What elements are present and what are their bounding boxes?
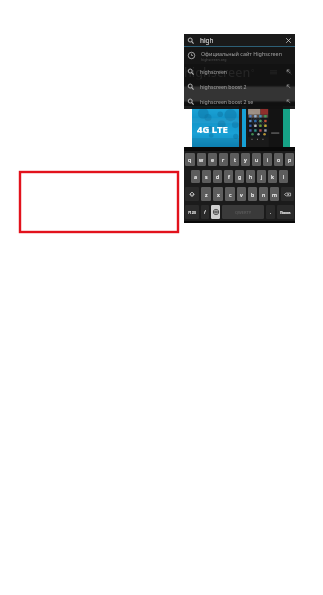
staticText: d bbox=[216, 173, 220, 180]
staticText: x bbox=[217, 191, 220, 198]
button[interactable]: Clear query bbox=[284, 36, 293, 45]
staticText: 4G LTE bbox=[197, 123, 228, 136]
button[interactable]: GLOBE bbox=[211, 205, 220, 219]
button[interactable]: w bbox=[197, 153, 206, 166]
staticText: highscreen.org bbox=[201, 57, 227, 62]
button[interactable]: e bbox=[208, 153, 217, 166]
button[interactable]: SHIFT bbox=[185, 187, 199, 201]
staticText: a bbox=[194, 173, 197, 180]
button[interactable]: m bbox=[270, 187, 279, 201]
button[interactable]: / bbox=[201, 205, 209, 219]
button[interactable]: d bbox=[213, 170, 222, 183]
button[interactable]: Insert suggestion bbox=[286, 69, 291, 74]
button[interactable]: b bbox=[248, 187, 257, 201]
staticText: highscreen bbox=[184, 64, 251, 81]
staticText: b bbox=[251, 191, 255, 198]
button[interactable]: highscreen boost 2 se bbox=[184, 94, 295, 109]
staticText: p bbox=[288, 156, 292, 163]
button[interactable]: p bbox=[285, 153, 294, 166]
button[interactable]: j bbox=[257, 170, 266, 183]
button[interactable]: Поиск bbox=[277, 205, 294, 219]
button[interactable]: . bbox=[266, 205, 275, 219]
button[interactable]: h bbox=[246, 170, 255, 183]
staticText: o bbox=[277, 156, 281, 163]
button[interactable]: Insert suggestion bbox=[286, 99, 291, 104]
button[interactable]: y bbox=[241, 153, 250, 166]
button[interactable]: i bbox=[263, 153, 272, 166]
staticText: / bbox=[204, 209, 206, 215]
button[interactable]: Официальный сайт Highscreen bbox=[184, 47, 295, 64]
button[interactable]: n bbox=[259, 187, 268, 201]
button[interactable]: highscreen bbox=[184, 64, 295, 79]
button[interactable]: t bbox=[230, 153, 239, 166]
button[interactable]: u bbox=[252, 153, 261, 166]
staticText: highscreen boost 2 se bbox=[200, 98, 254, 105]
staticText: k bbox=[271, 173, 274, 180]
staticText: s bbox=[205, 173, 208, 180]
staticText: Поиск bbox=[280, 210, 291, 215]
staticText: n bbox=[262, 191, 266, 198]
staticText: t bbox=[234, 156, 236, 163]
staticText: m bbox=[272, 191, 277, 198]
staticText: high bbox=[200, 36, 214, 45]
button[interactable]: x bbox=[213, 187, 223, 201]
button[interactable]: QWERTY bbox=[222, 205, 264, 219]
staticText: r bbox=[222, 156, 225, 163]
button[interactable]: Insert suggestion bbox=[286, 84, 291, 89]
staticText: u bbox=[255, 156, 259, 163]
staticText: Официальный сайт Highscreen bbox=[201, 50, 282, 57]
button[interactable]: k bbox=[268, 170, 277, 183]
button[interactable]: a bbox=[191, 170, 200, 183]
staticText: c bbox=[229, 191, 232, 198]
button[interactable]: f bbox=[224, 170, 233, 183]
staticText: . bbox=[270, 209, 272, 215]
staticText: h bbox=[249, 173, 253, 180]
staticText: f bbox=[228, 173, 230, 180]
button[interactable]: v bbox=[237, 187, 246, 201]
button[interactable]: z bbox=[201, 187, 211, 201]
staticText: highscreen bbox=[200, 68, 228, 75]
staticText: i bbox=[267, 156, 269, 163]
button[interactable]: o bbox=[274, 153, 283, 166]
staticText: z bbox=[205, 191, 208, 198]
button[interactable]: highscreen boost 2 bbox=[184, 79, 295, 94]
staticText: highscreen boost 2 bbox=[200, 83, 247, 90]
button[interactable]: g bbox=[235, 170, 244, 183]
button[interactable]: s bbox=[202, 170, 211, 183]
staticText: l bbox=[283, 173, 285, 180]
button[interactable]: l bbox=[279, 170, 288, 183]
staticText: j bbox=[261, 173, 263, 180]
button[interactable]: high bbox=[184, 34, 295, 47]
staticText: v bbox=[240, 191, 243, 198]
button[interactable]: c bbox=[225, 187, 235, 201]
staticText: g bbox=[238, 173, 242, 180]
button[interactable]: q bbox=[185, 153, 195, 166]
button[interactable]: DEL bbox=[281, 187, 294, 201]
button[interactable]: r bbox=[219, 153, 228, 166]
staticText: w bbox=[199, 156, 204, 163]
button[interactable]: ?123 bbox=[185, 205, 199, 219]
staticText: y bbox=[244, 156, 247, 163]
staticText: e bbox=[211, 156, 214, 163]
staticText: QWERTY bbox=[235, 210, 252, 215]
staticText: q bbox=[188, 156, 192, 163]
staticText: ?123 bbox=[188, 210, 196, 215]
